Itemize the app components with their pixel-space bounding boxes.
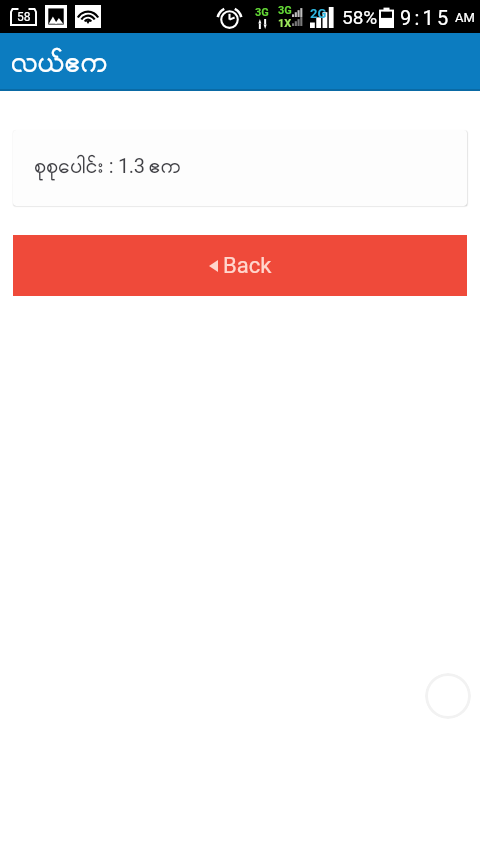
staticText: 1X bbox=[278, 17, 292, 30]
staticText: 58 bbox=[17, 10, 31, 24]
staticText: AM bbox=[455, 10, 475, 25]
staticText: 3G bbox=[255, 6, 269, 19]
staticText: 3G bbox=[278, 4, 292, 17]
staticText: စုစုပေါင်း : 1.3 ဧက bbox=[35, 154, 182, 180]
staticText: Back bbox=[223, 253, 272, 279]
staticText: လယ်ဧက bbox=[12, 47, 109, 82]
staticText: 2G bbox=[310, 6, 327, 21]
staticText: 58% bbox=[342, 6, 378, 28]
button[interactable]: Back bbox=[13, 235, 467, 296]
staticText: 9:15 bbox=[400, 6, 452, 29]
button[interactable]: စုစုပေါင်း : 1.3 ဧက bbox=[13, 130, 467, 206]
button[interactable]: Add bbox=[425, 673, 471, 719]
